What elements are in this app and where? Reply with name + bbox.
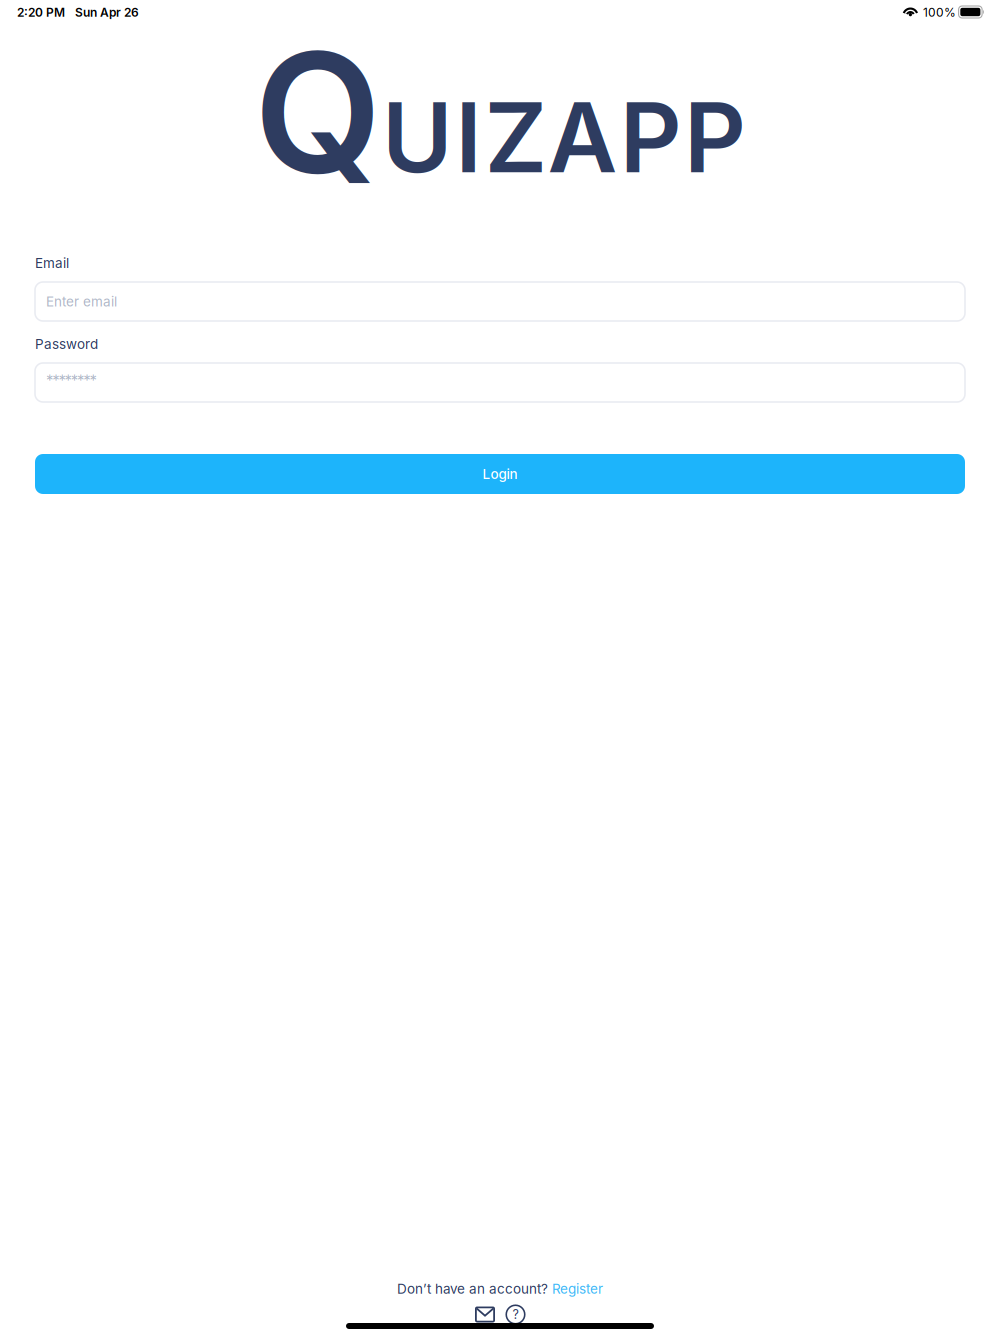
button[interactable]: Enter password — [35, 363, 965, 402]
button[interactable]: Enter email — [35, 282, 965, 321]
staticText: 2:20 PM — [17, 5, 65, 20]
button[interactable]: Help — [506, 1305, 525, 1324]
staticText: APP — [547, 79, 746, 195]
staticText: Enter email — [46, 293, 117, 310]
button[interactable]: Login — [35, 454, 965, 494]
staticText: Q — [254, 12, 382, 212]
staticText: ******** — [46, 371, 97, 389]
staticText: Sun Apr 26 — [75, 5, 139, 20]
staticText: ? — [512, 1307, 518, 1322]
staticText: UIZ — [382, 79, 547, 195]
staticText: Password — [35, 336, 98, 352]
staticText: Register — [552, 1281, 603, 1297]
button[interactable]: Contact support by email — [475, 1306, 495, 1322]
staticText: Login — [482, 466, 517, 482]
button[interactable]: Register — [552, 1281, 603, 1297]
staticText: Email — [35, 255, 69, 271]
staticText: Don’t have an account? — [397, 1281, 552, 1297]
staticText: 100% — [923, 5, 956, 20]
